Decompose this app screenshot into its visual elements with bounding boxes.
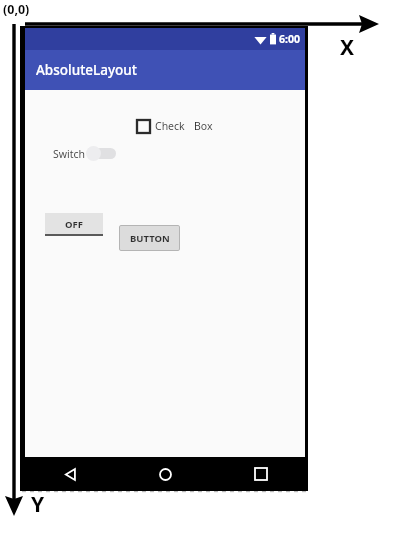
staticText: X [340,33,355,62]
button[interactable]: Check [137,119,213,133]
button[interactable]: Back [22,457,118,491]
button[interactable]: Switch [53,145,118,162]
staticText: AbsoluteLayout [36,61,137,79]
staticText: (0,0) [3,1,30,18]
button[interactable]: Home [118,457,213,491]
button[interactable]: OFF [45,213,103,236]
staticText: Switch [53,147,86,161]
staticText: OFF [65,218,83,231]
button[interactable]: Recent apps [213,457,308,491]
staticText: Y [31,490,45,519]
staticText: BUTTON [130,232,170,245]
staticText: Check [155,119,185,133]
button[interactable]: BUTTON [119,225,180,251]
staticText: 6:00 [279,32,300,46]
staticText: Box [194,119,213,133]
